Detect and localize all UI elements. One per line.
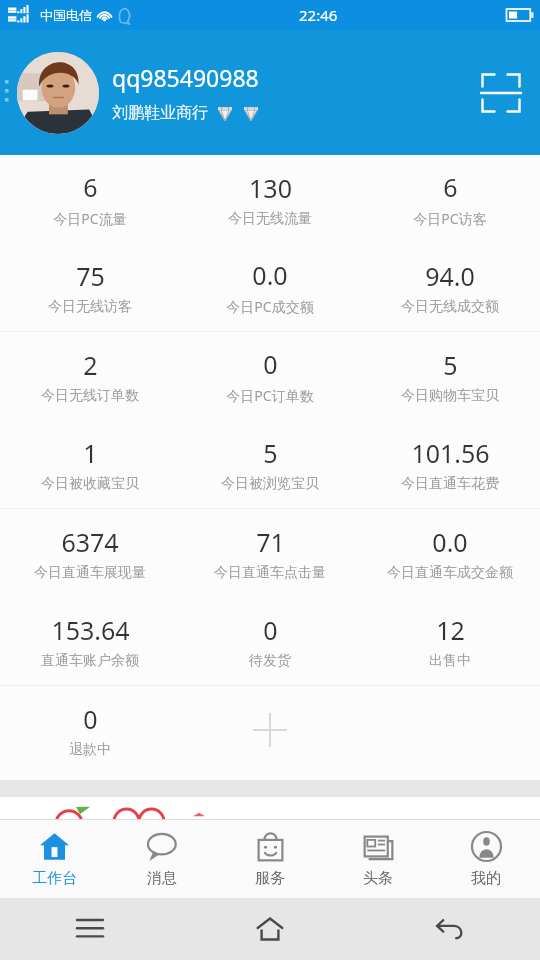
staticText: 今日PC访客 — [413, 209, 487, 228]
button[interactable]: 94.0 — [360, 243, 540, 331]
staticText: 0 — [263, 347, 278, 381]
staticText: 71 — [256, 525, 285, 559]
staticText: 退款中 — [69, 741, 111, 759]
staticText: 6374 — [61, 525, 119, 559]
staticText: 22:46 — [299, 5, 338, 25]
staticText: 今日无线流量 — [228, 210, 312, 228]
staticText: 服务 — [255, 869, 285, 888]
button[interactable]: 工作台 — [0, 820, 108, 898]
staticText: 0.0 — [432, 525, 468, 559]
staticText: 5 — [443, 348, 458, 382]
button[interactable]: Back — [360, 898, 540, 960]
button[interactable]: 0 — [0, 686, 180, 774]
staticText: 0.0 — [252, 258, 288, 292]
staticText: 直通车账户余额 — [41, 652, 139, 670]
staticText: 今日PC流量 — [53, 209, 127, 228]
button[interactable]: 5 — [180, 420, 360, 508]
button[interactable]: 75 — [0, 243, 180, 331]
button[interactable]: 130 — [180, 155, 360, 243]
staticText: 130 — [249, 171, 292, 205]
staticText: 75 — [76, 259, 105, 293]
staticText: 今日直通车花费 — [401, 475, 499, 493]
staticText: 1 — [83, 436, 98, 470]
staticText: 101.56 — [411, 436, 490, 470]
staticText: 今日无线访客 — [48, 298, 132, 316]
staticText: 94.0 — [425, 259, 475, 293]
staticText: 今日购物车宝贝 — [401, 387, 499, 405]
staticText: qq985490988 — [112, 62, 259, 93]
button[interactable]: 12 — [360, 597, 540, 685]
button[interactable]: 1 — [0, 420, 180, 508]
button[interactable]: 消息 — [108, 820, 216, 898]
staticText: 中国电信 — [40, 7, 92, 23]
button[interactable]: 服务 — [216, 820, 324, 898]
staticText: 今日直通车点击量 — [214, 564, 326, 582]
staticText: 6 — [83, 170, 98, 204]
button[interactable]: 6 — [0, 155, 180, 243]
button[interactable]: 153.64 — [0, 597, 180, 685]
button[interactable]: 6374 — [0, 509, 180, 597]
button[interactable]: Profile avatar — [17, 52, 99, 134]
button[interactable]: 71 — [180, 509, 360, 597]
button[interactable]: 我的 — [432, 820, 540, 898]
button[interactable]: 2 — [0, 332, 180, 420]
button[interactable]: 0 — [180, 332, 360, 420]
staticText: 153.64 — [51, 613, 130, 647]
button[interactable]: Home — [180, 898, 360, 960]
button[interactable]: 0.0 — [180, 243, 360, 331]
staticText: 0 — [83, 702, 98, 736]
button[interactable]: 0.0 — [360, 509, 540, 597]
staticText: 12 — [436, 613, 465, 647]
staticText: 今日无线订单数 — [41, 387, 139, 405]
staticText: 2 — [83, 348, 98, 382]
staticText: 消息 — [147, 869, 177, 888]
staticText: 刘鹏鞋业商行 — [112, 103, 208, 123]
staticText: 今日无线成交额 — [401, 298, 499, 316]
staticText: 今日被浏览宝贝 — [221, 475, 319, 493]
staticText: 今日直通车展现量 — [34, 564, 146, 582]
staticText: 工作台 — [32, 869, 77, 888]
staticText: 出售中 — [429, 652, 471, 670]
staticText: 今日PC成交额 — [226, 297, 314, 316]
staticText: 今日被收藏宝贝 — [41, 475, 139, 493]
button[interactable]: Add metric — [180, 686, 360, 774]
staticText: 我的 — [471, 869, 501, 888]
staticText: 今日直通车成交金额 — [387, 564, 513, 582]
button[interactable]: Scan QR code — [476, 68, 526, 118]
staticText: 5 — [263, 436, 278, 470]
button[interactable]: 101.56 — [360, 420, 540, 508]
staticText: 待发货 — [249, 652, 291, 670]
button[interactable]: 6 — [360, 155, 540, 243]
button[interactable]: 5 — [360, 332, 540, 420]
staticText: 6 — [443, 170, 458, 204]
staticText: 0 — [263, 613, 278, 647]
button[interactable]: Menu — [0, 898, 180, 960]
staticText: 今日PC订单数 — [226, 386, 314, 405]
button[interactable]: 0 — [180, 597, 360, 685]
staticText: 头条 — [363, 869, 393, 888]
button[interactable]: 头条 — [324, 820, 432, 898]
